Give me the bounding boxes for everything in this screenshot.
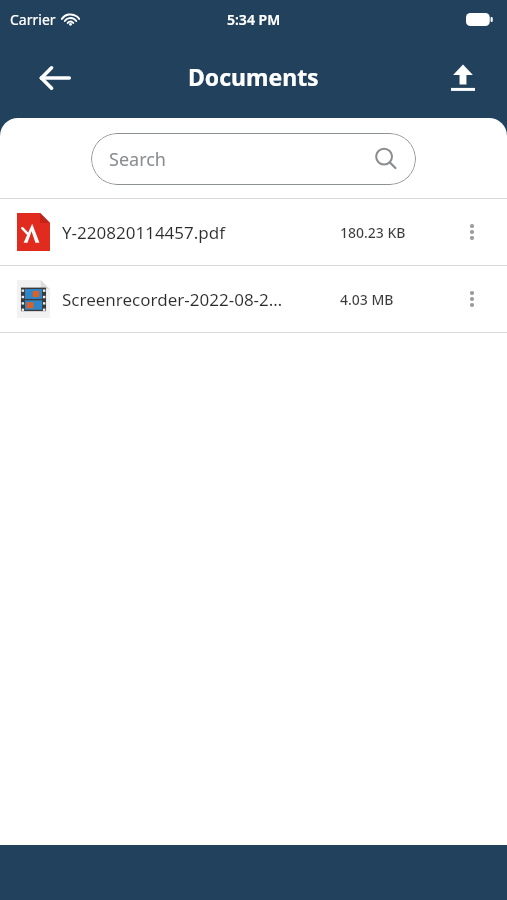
- staticText: 4.03 MB: [340, 290, 394, 309]
- staticText: Carrier: [10, 10, 56, 29]
- button[interactable]: Upload: [439, 54, 487, 102]
- staticText: 180.23 KB: [340, 223, 406, 242]
- staticText: Y-220820114457.pdf: [62, 221, 340, 244]
- button[interactable]: More options: [454, 281, 490, 317]
- button[interactable]: Back: [30, 53, 80, 103]
- staticText: Search: [109, 147, 166, 172]
- button[interactable]: Y-220820114457.pdf: [0, 199, 507, 265]
- button[interactable]: Screenrecorder-2022-08-2…: [0, 266, 507, 332]
- staticText: Documents: [188, 61, 319, 92]
- staticText: 5:34 PM: [227, 10, 281, 29]
- button[interactable]: More options: [454, 214, 490, 250]
- button[interactable]: Search: [91, 133, 416, 185]
- staticText: Screenrecorder-2022-08-2…: [62, 288, 340, 311]
